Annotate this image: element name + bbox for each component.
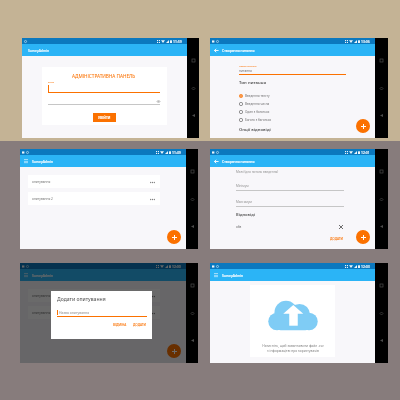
button[interactable]: ВІДМІНА [112, 323, 128, 327]
staticText: Мінімум [236, 184, 249, 188]
staticText: Опції відповіді [239, 127, 271, 133]
staticText: УВІЙТИ [98, 115, 111, 120]
staticText: ВІДМІНА [113, 323, 127, 327]
button[interactable]: Recent apps [188, 167, 197, 176]
button[interactable]: Введення тексту [239, 92, 346, 100]
staticText: питання [239, 69, 252, 73]
button[interactable]: Add [356, 230, 370, 244]
button[interactable]: Open menu [22, 271, 30, 279]
button[interactable]: Введення числа [239, 100, 346, 108]
button[interactable]: Back [377, 222, 386, 231]
button[interactable]: Add [167, 230, 181, 244]
staticText: Введення числа [245, 102, 270, 106]
staticText: абв [236, 225, 242, 229]
staticText: 12:00 [172, 264, 181, 269]
staticText: АДМІНІСТРАТИВНА ПАНЕЛЬ [72, 73, 136, 79]
staticText: SurveyAdmin [222, 273, 244, 278]
staticText: 11:59 [173, 39, 182, 44]
staticText: Тип питання [239, 80, 267, 86]
button[interactable]: Home [189, 84, 198, 93]
button[interactable]: Delete answer [337, 223, 344, 230]
button[interactable]: опитування [28, 289, 160, 302]
button[interactable]: Home [188, 195, 197, 204]
staticText: ДОДАТИ [330, 237, 343, 241]
button[interactable]: ДОДАТИ [329, 236, 344, 242]
button[interactable]: Back [377, 336, 386, 345]
button[interactable]: Recent apps [377, 56, 386, 65]
staticText: SurveyAdmin [32, 159, 54, 164]
button[interactable]: Recent apps [188, 281, 197, 290]
button[interactable]: More options [148, 309, 156, 317]
staticText: 12:01 [361, 150, 370, 155]
button[interactable]: Home [377, 309, 386, 318]
button[interactable]: ДОДАТИ [132, 323, 147, 327]
staticText: Один з багатьох [245, 110, 270, 114]
staticText: опитування [32, 294, 51, 298]
staticText: опитування 2 [32, 311, 53, 315]
staticText: Email [48, 80, 55, 83]
button[interactable]: Recent apps [377, 167, 386, 176]
button[interactable]: Back [212, 157, 220, 165]
button[interactable]: опитування [28, 175, 160, 188]
button[interactable]: More options [148, 292, 156, 300]
button[interactable]: More options [148, 195, 156, 203]
staticText: Натисніть, щоб завантажити файл .csv з і… [262, 343, 324, 353]
staticText: опитування [32, 180, 51, 184]
staticText: Введення тексту [245, 94, 270, 98]
staticText: Багато з багатьох [245, 118, 272, 122]
staticText: 13:06 [361, 39, 370, 44]
button[interactable]: Home [188, 309, 197, 318]
staticText: 12:03 [361, 264, 370, 269]
staticText: Назва опитування [59, 310, 90, 315]
button[interactable]: More options [148, 178, 156, 186]
staticText: Додати опитування [57, 296, 106, 303]
button[interactable]: Add [167, 344, 181, 358]
staticText: Створення питання [222, 159, 255, 164]
button[interactable]: опитування 2 [28, 192, 160, 205]
staticText: 11:49 [172, 150, 181, 155]
button[interactable]: Home [377, 84, 386, 93]
button[interactable]: Add [356, 119, 370, 133]
button[interactable]: Upload CSV file [250, 285, 335, 357]
button[interactable]: Багато з багатьох [239, 116, 346, 124]
button[interactable]: Home [377, 195, 386, 204]
staticText: Максимум [236, 200, 252, 204]
button[interactable]: Open menu [22, 157, 30, 165]
button[interactable]: Back [212, 46, 220, 54]
staticText: SurveyAdmin [32, 273, 54, 278]
button[interactable]: опитування 2 [28, 306, 160, 319]
staticText: Відповіді [236, 212, 255, 217]
button[interactable]: Recent apps [377, 281, 386, 290]
staticText: опитування 2 [32, 197, 53, 201]
button[interactable]: Один з багатьох [239, 108, 346, 116]
staticText: ДОДАТИ [133, 323, 146, 327]
staticText: Назва питання [239, 64, 257, 67]
button[interactable]: Back [377, 111, 386, 120]
button[interactable]: Back [189, 111, 198, 120]
staticText: SurveyAdmin [28, 48, 50, 53]
button[interactable]: Back [188, 222, 197, 231]
button[interactable]: Recent apps [189, 56, 198, 65]
button[interactable]: УВІЙТИ [93, 113, 116, 122]
button[interactable]: Open menu [212, 271, 220, 279]
staticText: Створення питання [222, 48, 255, 53]
staticText: Межі (для питань введення) [236, 170, 279, 174]
button[interactable]: Back [188, 336, 197, 345]
